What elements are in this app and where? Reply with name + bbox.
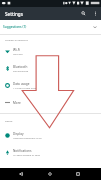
staticText: Suggestions (1) bbox=[3, 25, 27, 29]
staticText: More bbox=[13, 101, 21, 105]
button[interactable]: Bluetooth bbox=[0, 60, 101, 77]
staticText: Bluetooth bbox=[13, 65, 28, 69]
staticText: Adaptive brightness is On bbox=[13, 136, 42, 139]
button[interactable]: Data usage bbox=[0, 77, 101, 94]
button[interactable]: Home bbox=[44, 168, 56, 180]
button[interactable]: More bbox=[0, 94, 101, 111]
staticText: Wi-Fi bbox=[13, 48, 21, 52]
button[interactable]: Display bbox=[0, 127, 101, 144]
button[interactable]: Suggestions (1) bbox=[0, 20, 101, 34]
staticText: All apps allowed to send bbox=[13, 153, 41, 156]
staticText: Display bbox=[13, 132, 24, 136]
staticText: Disconnected bbox=[13, 69, 29, 72]
staticText: Device bbox=[5, 119, 13, 122]
button[interactable]: Wi-Fi bbox=[0, 43, 101, 60]
button[interactable]: More options bbox=[90, 8, 101, 19]
button[interactable]: Recents bbox=[72, 168, 84, 180]
staticText: Data usage bbox=[13, 82, 30, 86]
staticText: Settings bbox=[5, 11, 23, 17]
button[interactable]: Back bbox=[15, 168, 27, 180]
staticText: Notifications bbox=[13, 149, 32, 153]
staticText: 1.43 GB of data used bbox=[13, 86, 37, 89]
button[interactable]: Search bbox=[77, 7, 90, 20]
button[interactable]: Notifications bbox=[0, 144, 101, 161]
staticText: Wireless & networks bbox=[5, 38, 28, 41]
staticText: Tero wifi bbox=[13, 52, 23, 55]
